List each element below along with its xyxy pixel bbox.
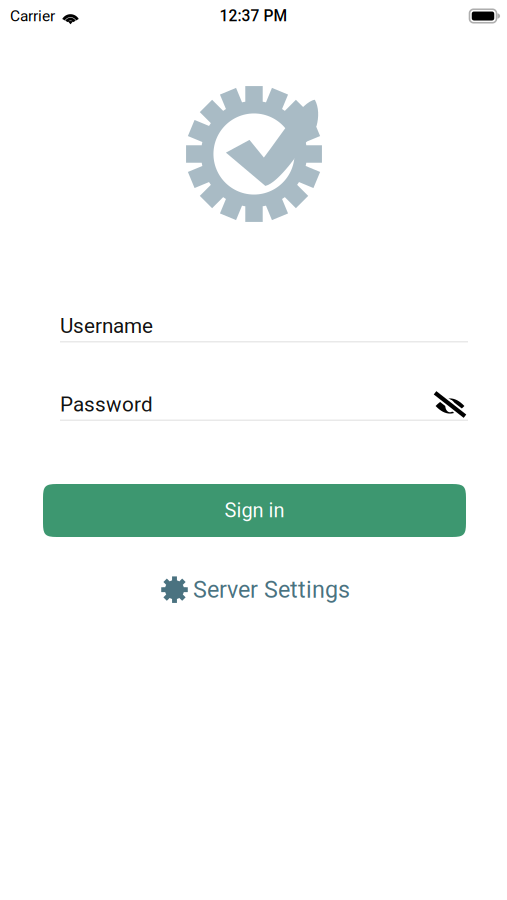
staticText: Username <box>60 314 153 338</box>
staticText: Carrier <box>10 7 55 25</box>
staticText: Sign in <box>224 499 284 522</box>
staticText: Server Settings <box>193 576 350 603</box>
button[interactable]: Show password <box>432 390 468 418</box>
button[interactable]: Server Settings <box>153 570 358 609</box>
staticText: 12:37 PM <box>219 7 287 25</box>
staticText: Password <box>60 392 153 417</box>
button[interactable]: Sign in <box>43 484 466 537</box>
